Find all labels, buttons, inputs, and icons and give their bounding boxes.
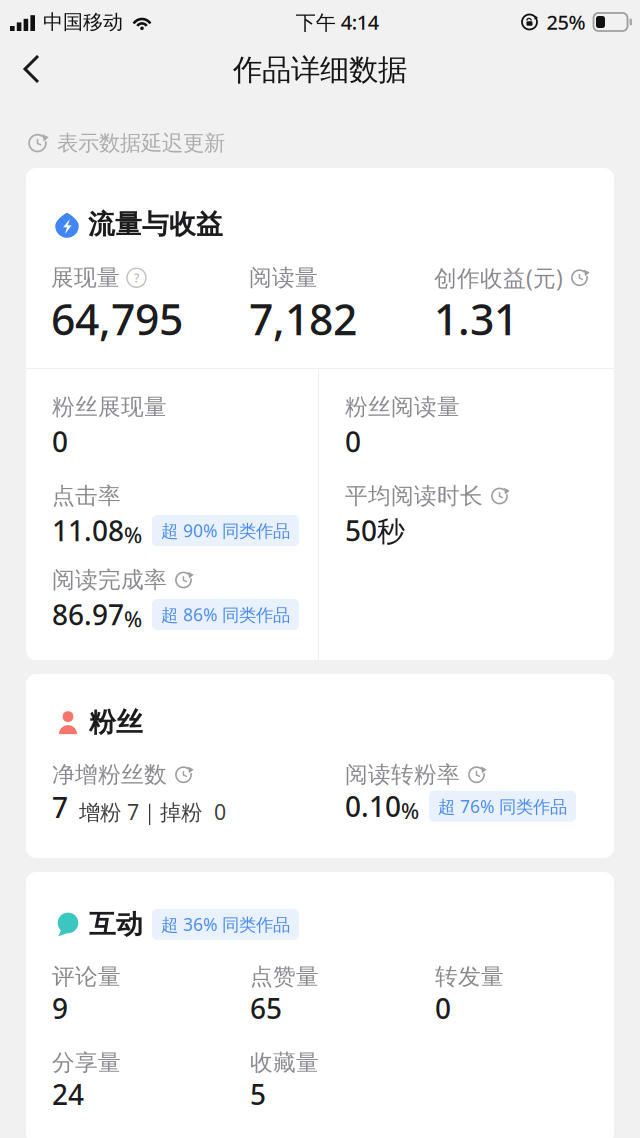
staticText: 净增粉丝数 [52, 761, 167, 789]
staticText: 表示数据延迟更新 [57, 130, 225, 156]
staticText: 65 [250, 990, 282, 1027]
staticText: 超 86% 同类作品 [161, 603, 290, 626]
staticText: % [124, 521, 142, 549]
button[interactable]: Back [0, 46, 62, 104]
staticText: 阅读量 [249, 264, 318, 292]
staticText: 1.31 [434, 290, 518, 347]
staticText: 86.97 [52, 596, 124, 633]
staticText: 50秒 [345, 512, 405, 549]
staticText: 创作收益(元) [434, 263, 563, 293]
staticText: 阅读完成率 [52, 566, 167, 594]
staticText: 流量与收益 [88, 208, 223, 241]
staticText: 分享量 [52, 1049, 121, 1077]
staticText: 中国移动 [43, 10, 123, 34]
staticText: 超 90% 同类作品 [161, 519, 290, 542]
staticText: % [401, 796, 419, 825]
staticText: 0 [345, 423, 361, 460]
staticText: 点击率 [52, 482, 121, 510]
staticText: 25% [546, 9, 585, 35]
staticText: 转发量 [435, 963, 504, 991]
staticText: 增粉 7｜掉粉 0 [79, 797, 226, 826]
staticText: 超 76% 同类作品 [438, 795, 567, 818]
staticText: 评论量 [52, 963, 121, 991]
staticText: 24 [52, 1076, 84, 1113]
staticText: 9 [52, 990, 68, 1027]
staticText: 阅读转粉率 [345, 761, 460, 789]
staticText: 平均阅读时长 [345, 482, 483, 510]
staticText: 粉丝展现量 [52, 393, 167, 421]
staticText: ? [134, 270, 139, 286]
staticText: 0.10 [345, 788, 401, 825]
staticText: 粉丝阅读量 [345, 393, 460, 421]
staticText: 超 36% 同类作品 [161, 913, 290, 936]
staticText: 7 [52, 789, 68, 826]
staticText: 点赞量 [250, 963, 319, 991]
staticText: 64,795 [51, 290, 183, 347]
staticText: 作品详细数据 [233, 52, 407, 88]
staticText: 下午 4:14 [296, 9, 379, 35]
staticText: 互动 [89, 908, 143, 941]
staticText: 11.08 [52, 512, 124, 549]
staticText: 粉丝 [89, 706, 143, 739]
staticText: 收藏量 [250, 1049, 319, 1077]
staticText: 5 [250, 1076, 266, 1113]
staticText: % [124, 605, 142, 633]
staticText: 展现量 [51, 264, 120, 292]
staticText: 0 [52, 423, 68, 460]
staticText: 0 [435, 990, 451, 1027]
staticText: 7,182 [249, 290, 357, 347]
